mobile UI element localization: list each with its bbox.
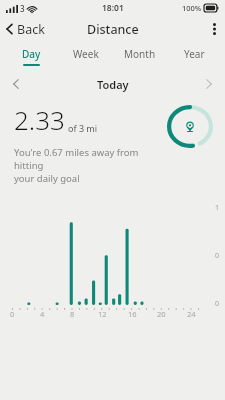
staticText: 100% <box>182 3 202 13</box>
staticText: of 3 mi <box>68 122 98 134</box>
staticText: 3 <box>20 3 25 14</box>
staticText: 4 <box>40 309 45 319</box>
staticText: Day <box>22 47 41 61</box>
staticText: 2.33 <box>14 102 65 137</box>
button[interactable]: Back <box>0 16 55 42</box>
button[interactable]: Year <box>167 42 221 70</box>
staticText: Year <box>184 47 205 61</box>
staticText: 24 <box>187 309 196 319</box>
staticText: 20 <box>157 309 166 319</box>
staticText: Distance <box>87 21 139 38</box>
staticText: 16 <box>128 309 137 319</box>
button[interactable]: Day <box>4 42 59 70</box>
staticText: 1 <box>215 203 220 213</box>
staticText: 0 <box>215 251 220 261</box>
staticText: 12 <box>98 309 107 319</box>
staticText: Today <box>97 77 129 92</box>
staticText: 18:01 <box>102 2 124 14</box>
staticText: 0 <box>10 309 15 319</box>
staticText: You're 0.67 miles away from hitting your… <box>14 146 163 185</box>
staticText: Month <box>124 47 156 61</box>
button[interactable]: Previous day <box>0 72 32 96</box>
button[interactable]: Week <box>59 42 113 70</box>
button[interactable]: Month <box>113 42 167 70</box>
button[interactable]: More options <box>204 18 225 40</box>
button[interactable]: Next day <box>193 72 225 96</box>
staticText: 0 <box>215 299 220 309</box>
staticText: Back <box>17 21 45 37</box>
staticText: 8 <box>70 309 75 319</box>
staticText: Week <box>73 47 99 61</box>
